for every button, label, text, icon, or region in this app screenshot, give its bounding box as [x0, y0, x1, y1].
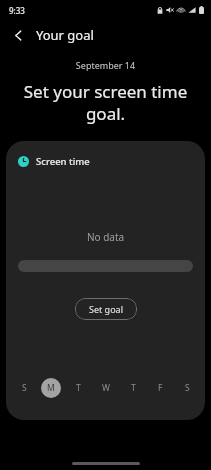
staticText: Set your screen time goal.	[14, 80, 197, 125]
button[interactable]: T	[68, 378, 88, 398]
staticText: Your goal	[36, 26, 94, 44]
staticText: T	[76, 382, 81, 394]
button[interactable]: T	[123, 378, 143, 398]
staticText: S	[22, 382, 27, 394]
button[interactable]: F	[150, 378, 170, 398]
staticText: S	[185, 382, 190, 394]
staticText: W	[102, 382, 110, 394]
staticText: September 14	[0, 59, 211, 71]
button[interactable]: Back	[4, 21, 32, 49]
staticText: 9:33	[9, 5, 25, 16]
staticText: No data	[6, 230, 205, 244]
button[interactable]: S	[177, 378, 197, 398]
staticText: F	[158, 382, 163, 394]
staticText: Set goal	[89, 303, 123, 315]
staticText: T	[131, 382, 136, 394]
button[interactable]: W	[96, 378, 116, 398]
staticText: M	[47, 382, 55, 394]
staticText: Screen time	[36, 155, 90, 168]
button[interactable]: Set goal	[75, 298, 137, 320]
button[interactable]: S	[14, 378, 34, 398]
button[interactable]: M	[41, 378, 61, 398]
